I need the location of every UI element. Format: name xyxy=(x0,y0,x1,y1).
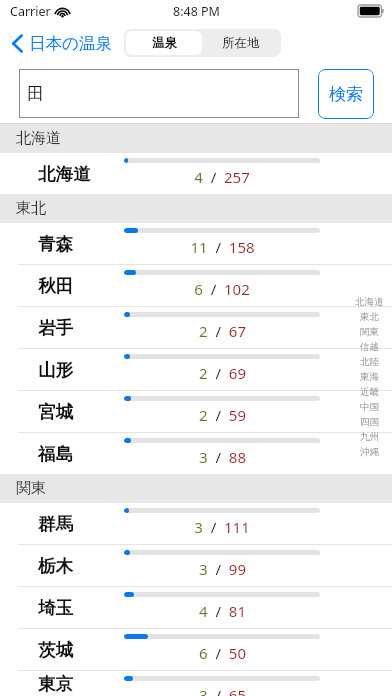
button[interactable]: 温泉 xyxy=(126,31,202,55)
staticText: 3 / 88 xyxy=(199,447,246,467)
staticText: 沖縄 xyxy=(360,446,379,458)
staticText: 3 / 99 xyxy=(199,559,246,579)
staticText: 3 / 111 xyxy=(194,517,250,537)
button[interactable]: 宮城 xyxy=(0,391,392,432)
button[interactable]: 福島 xyxy=(0,433,392,474)
staticText: 九州 xyxy=(360,431,379,443)
staticText: 秋田 xyxy=(38,275,73,297)
staticText: 福島 xyxy=(38,443,73,465)
button[interactable]: 埼玉 xyxy=(0,587,392,628)
button[interactable]: 田 xyxy=(19,69,299,118)
button[interactable]: 栃木 xyxy=(0,545,392,586)
staticText: 2 / 69 xyxy=(199,363,246,383)
staticText: 栃木 xyxy=(38,555,73,577)
staticText: 3 / 65 xyxy=(199,685,246,696)
staticText: 11 / 158 xyxy=(190,237,255,257)
staticText: 関東 xyxy=(360,326,379,338)
button[interactable]: 青森 xyxy=(0,223,392,264)
staticText: 山形 xyxy=(38,359,73,381)
staticText: 北海道 xyxy=(38,163,91,185)
staticText: 4 / 257 xyxy=(194,167,250,187)
staticText: 田 xyxy=(27,83,44,104)
staticText: 中国 xyxy=(360,401,379,413)
staticText: 北海道 xyxy=(16,129,61,148)
button[interactable]: 岩手 xyxy=(0,307,392,348)
staticText: 6 / 50 xyxy=(199,643,246,663)
staticText: 東北 xyxy=(360,311,379,323)
button[interactable]: 所在地 xyxy=(202,31,279,55)
staticText: 岩手 xyxy=(38,317,73,339)
staticText: 北海道 xyxy=(355,296,384,308)
button[interactable]: 日本の温泉 xyxy=(8,29,115,58)
staticText: 日本の温泉 xyxy=(29,33,112,54)
button[interactable]: 山形 xyxy=(0,349,392,390)
staticText: 信越 xyxy=(360,341,379,353)
button[interactable]: 秋田 xyxy=(0,265,392,306)
button[interactable]: 茨城 xyxy=(0,629,392,670)
staticText: 関東 xyxy=(16,479,46,498)
button[interactable]: 北海道 xyxy=(0,153,392,194)
staticText: 北陸 xyxy=(360,356,379,368)
staticText: 東北 xyxy=(16,199,46,218)
staticText: 6 / 102 xyxy=(194,279,250,299)
staticText: 茨城 xyxy=(38,639,73,661)
staticText: 4 / 81 xyxy=(199,601,246,621)
staticText: 近畿 xyxy=(360,386,379,398)
staticText: 青森 xyxy=(38,233,73,255)
staticText: 埼玉 xyxy=(38,597,73,619)
staticText: 東京 xyxy=(38,673,73,695)
button[interactable]: 検索 xyxy=(318,69,374,119)
staticText: 2 / 59 xyxy=(199,405,246,425)
staticText: 東海 xyxy=(360,371,379,383)
button[interactable]: 東京 xyxy=(0,671,392,696)
staticText: 所在地 xyxy=(222,35,260,51)
button[interactable]: 群馬 xyxy=(0,503,392,544)
staticText: 四国 xyxy=(360,416,379,428)
staticText: 8:48 PM xyxy=(173,3,220,20)
staticText: 2 / 67 xyxy=(199,321,246,341)
staticText: Carrier xyxy=(10,3,51,20)
staticText: 宮城 xyxy=(38,401,73,423)
button[interactable]: Section index xyxy=(352,294,386,459)
staticText: 温泉 xyxy=(152,35,177,51)
staticText: 群馬 xyxy=(38,513,73,535)
staticText: 検索 xyxy=(329,84,363,105)
